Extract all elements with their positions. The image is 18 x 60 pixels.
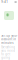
staticText: Set up your account in minutes: [1, 34, 17, 45]
staticText: 9:41: [1, 0, 8, 4]
staticText: Everything you need to get going: [1, 45, 15, 59]
